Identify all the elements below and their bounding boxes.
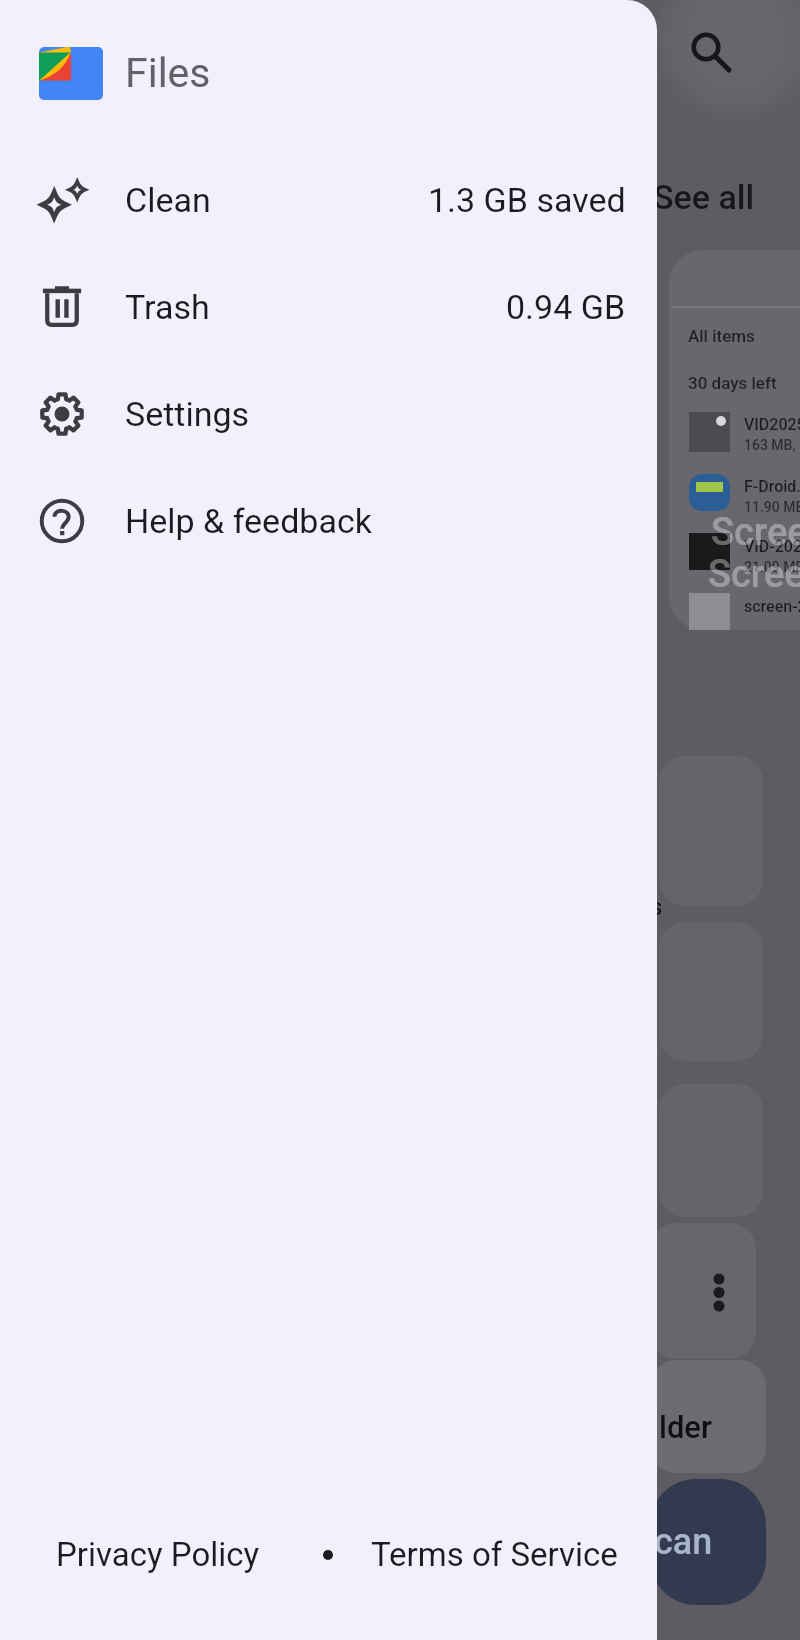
staticText: 0.94 GB bbox=[506, 287, 626, 327]
staticText: Trash bbox=[125, 287, 210, 327]
staticText: Scree bbox=[711, 510, 800, 555]
staticText: 163 MB, 30 bbox=[744, 437, 800, 453]
button[interactable]: More options bbox=[658, 1250, 800, 1340]
staticText: All items bbox=[688, 326, 755, 346]
staticText: 30 days left bbox=[688, 373, 777, 393]
staticText: Screens bbox=[708, 552, 800, 597]
staticText: can bbox=[654, 1521, 713, 1563]
button[interactable]: Settings bbox=[0, 360, 657, 467]
button[interactable]: Help & feedback bbox=[0, 467, 657, 574]
staticText: lder bbox=[659, 1409, 712, 1445]
staticText: screen-20 bbox=[744, 597, 800, 616]
staticText: s bbox=[650, 893, 663, 921]
button[interactable]: Files bbox=[0, 41, 211, 105]
staticText: VID20250 bbox=[744, 415, 800, 434]
button[interactable]: Terms of Service bbox=[367, 1521, 622, 1588]
staticText: See all bbox=[653, 177, 755, 217]
staticText: Help & feedback bbox=[125, 501, 372, 541]
button[interactable]: Search bbox=[658, 0, 800, 110]
button[interactable]: Clean bbox=[0, 146, 657, 253]
staticText: Settings bbox=[125, 394, 250, 434]
staticText: VID-2025 bbox=[744, 537, 800, 556]
staticText: Clean bbox=[125, 180, 211, 220]
staticText: 21.09 MB, bbox=[744, 559, 800, 575]
staticText: F-Droid.a bbox=[744, 477, 800, 496]
staticText: 11.90 MB, 3 bbox=[744, 499, 800, 515]
button[interactable]: Scan bbox=[650, 1479, 800, 1605]
staticText: 1.3 GB saved bbox=[428, 180, 626, 220]
staticText: Files bbox=[125, 49, 211, 97]
button[interactable]: Trash bbox=[0, 253, 657, 360]
button[interactable]: Privacy Policy bbox=[52, 1521, 264, 1588]
